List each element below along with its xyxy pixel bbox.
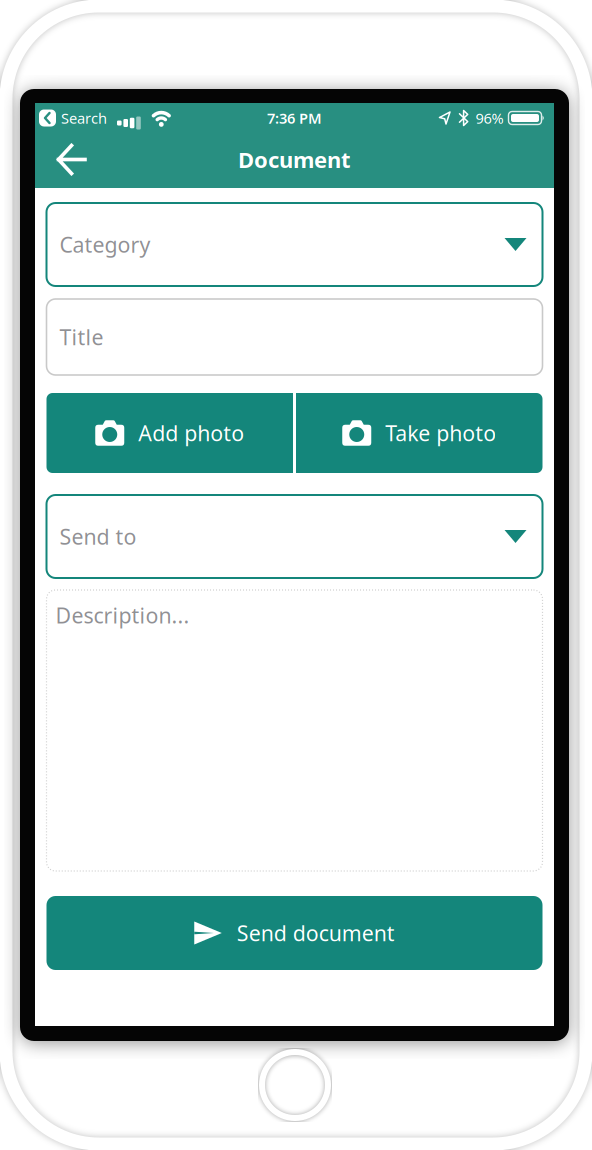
staticText: Category bbox=[59, 230, 150, 259]
staticText: Add photo bbox=[138, 419, 244, 447]
button[interactable]: Send to bbox=[46, 495, 542, 578]
button[interactable]: Send document bbox=[46, 896, 542, 970]
staticText: Description... bbox=[55, 601, 189, 629]
button[interactable]: Category bbox=[46, 203, 542, 286]
staticText: Send document bbox=[237, 919, 395, 947]
staticText: Document bbox=[238, 144, 351, 174]
button[interactable]: Description... bbox=[46, 590, 542, 871]
button[interactable]: Title bbox=[46, 299, 542, 375]
staticText: 7:36 PM bbox=[267, 108, 322, 128]
button[interactable]: Add photo bbox=[46, 393, 293, 473]
button[interactable]: Take photo bbox=[296, 393, 542, 473]
staticText: Take photo bbox=[385, 419, 496, 447]
staticText: Search bbox=[61, 108, 107, 128]
staticText: 96% bbox=[475, 108, 503, 128]
staticText: Send to bbox=[59, 522, 136, 551]
staticText: Title bbox=[59, 323, 103, 351]
button[interactable]: Back bbox=[35, 136, 98, 182]
